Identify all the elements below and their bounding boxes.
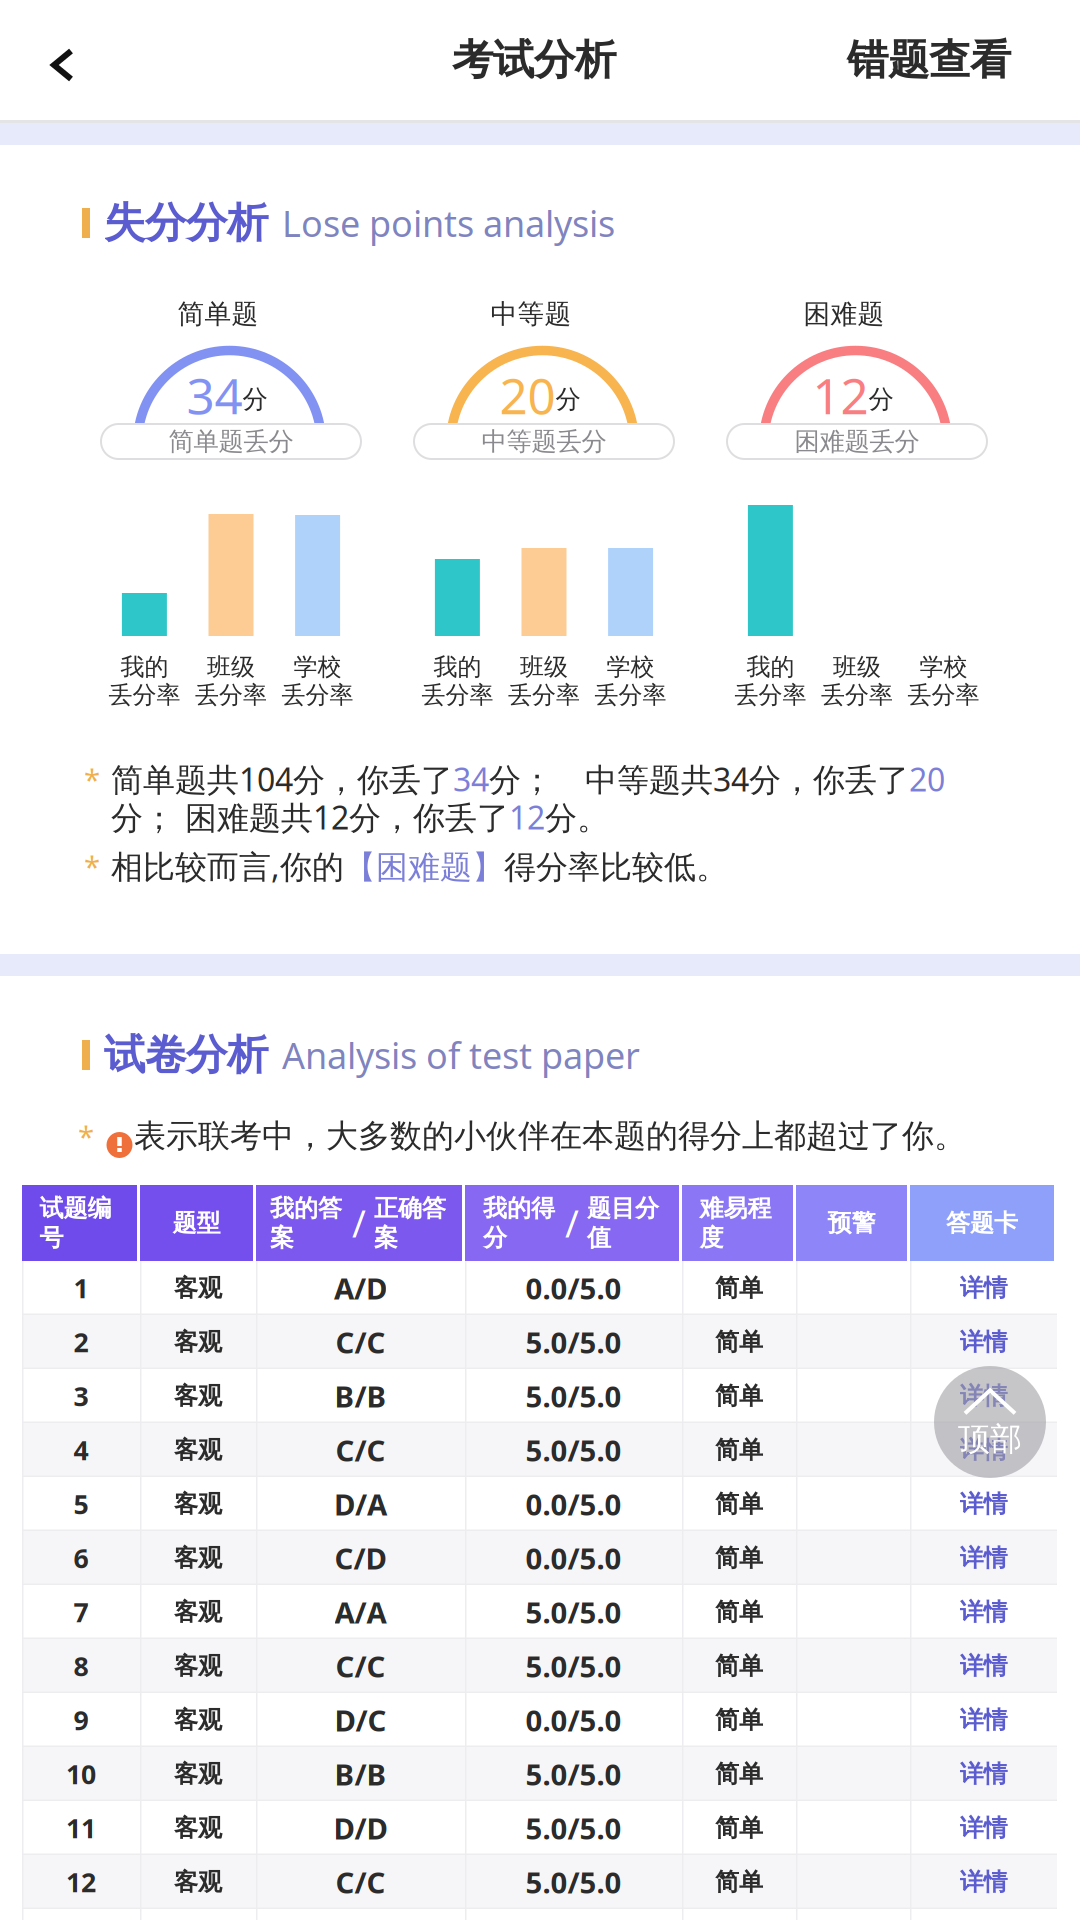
staticText: 我的: [433, 652, 481, 682]
staticText: 表示联考中，大多数的小伙伴在本题的得分上都超过了你。: [134, 1116, 966, 1156]
staticText: 我的答案: [270, 1193, 342, 1252]
staticText: A/D: [334, 1268, 387, 1307]
staticText: Lose points analysis: [282, 199, 615, 247]
button[interactable]: 11: [22, 1801, 1057, 1855]
staticText: 丢分率: [282, 680, 354, 710]
staticText: 简单: [715, 1813, 763, 1843]
staticText: 丢分率: [195, 680, 267, 710]
button[interactable]: 1: [22, 1261, 1057, 1315]
staticText: 试卷分析: [104, 1030, 268, 1080]
staticText: 5.0/5.0: [525, 1592, 621, 1631]
staticText: 简单: [715, 1759, 763, 1789]
staticText: 丢分率: [508, 680, 580, 710]
staticText: 详情: [959, 1489, 1007, 1519]
staticText: 简单题: [177, 298, 258, 330]
staticText: B/B: [334, 1754, 386, 1793]
staticText: 我的得分: [483, 1193, 555, 1252]
staticText: D/A: [334, 1484, 387, 1523]
staticText: 客观: [174, 1273, 222, 1303]
button[interactable]: 返回: [0, 0, 124, 120]
staticText: C/C: [335, 1322, 385, 1361]
staticText: D/D: [333, 1808, 387, 1847]
staticText: 12: [812, 362, 868, 428]
staticText: 10: [66, 1756, 96, 1792]
staticText: 试题编号: [39, 1193, 111, 1252]
staticText: 客观: [174, 1867, 222, 1897]
staticText: C/C: [335, 1862, 385, 1901]
staticText: 客观: [174, 1705, 222, 1735]
staticText: 0.0/5.0: [525, 1538, 621, 1577]
staticText: 简单题丢分: [168, 426, 293, 457]
staticText: A/A: [334, 1592, 386, 1631]
staticText: 相比较而言,你的【困难题】得分率比较低。: [111, 845, 728, 887]
staticText: 分: [555, 384, 580, 415]
staticText: 困难题丢分: [794, 426, 919, 457]
button[interactable]: 6: [22, 1531, 1057, 1585]
staticText: 详情: [959, 1543, 1007, 1573]
staticText: D/C: [334, 1700, 386, 1739]
staticText: 顶部: [958, 1419, 1022, 1459]
staticText: 5.0/5.0: [525, 1430, 621, 1469]
staticText: 预警: [827, 1208, 875, 1238]
staticText: 0.0/5.0: [525, 1484, 621, 1523]
staticText: 详情: [959, 1597, 1007, 1627]
staticText: 答题卡: [946, 1208, 1018, 1238]
staticText: 客观: [174, 1327, 222, 1357]
staticText: 简单: [715, 1381, 763, 1411]
staticText: 班级: [207, 652, 255, 682]
staticText: 失分分析: [104, 198, 268, 248]
staticText: 5: [73, 1486, 88, 1522]
staticText: 我的: [120, 652, 168, 682]
staticText: 简单: [715, 1597, 763, 1627]
staticText: 丢分率: [821, 680, 893, 710]
staticText: 难易程度: [699, 1193, 771, 1252]
staticText: 简单: [715, 1489, 763, 1519]
staticText: 正确答案: [374, 1193, 446, 1252]
staticText: 5.0/5.0: [525, 1862, 621, 1901]
button[interactable]: 4: [22, 1423, 1057, 1477]
button[interactable]: 7: [22, 1585, 1057, 1639]
button[interactable]: 9: [22, 1693, 1057, 1747]
staticText: 详情: [959, 1651, 1007, 1681]
staticText: 学校: [920, 652, 968, 682]
button[interactable]: 2: [22, 1315, 1057, 1369]
staticText: 中等题丢分: [481, 426, 606, 457]
staticText: 0.0/5.0: [525, 1700, 621, 1739]
staticText: 困难题: [803, 298, 884, 330]
staticText: 8: [73, 1648, 88, 1684]
button[interactable]: 8: [22, 1639, 1057, 1693]
staticText: 丢分率: [734, 680, 806, 710]
staticText: 客观: [174, 1759, 222, 1789]
staticText: 客观: [174, 1543, 222, 1573]
staticText: 考试分析: [452, 35, 616, 85]
staticText: 9: [73, 1702, 88, 1738]
staticText: 客观: [174, 1489, 222, 1519]
staticText: 5.0/5.0: [525, 1754, 621, 1793]
staticText: 详情: [959, 1327, 1007, 1357]
button[interactable]: 10: [22, 1747, 1057, 1801]
staticText: 丢分率: [908, 680, 980, 710]
button[interactable]: 12: [22, 1855, 1057, 1909]
staticText: 丢分率: [108, 680, 180, 710]
staticText: /: [565, 1198, 579, 1248]
staticText: 错题查看: [847, 35, 1011, 85]
staticText: 简单: [715, 1651, 763, 1681]
staticText: 6: [73, 1540, 88, 1576]
staticText: 学校: [294, 652, 342, 682]
button[interactable]: 3: [22, 1369, 1057, 1423]
staticText: 客观: [174, 1813, 222, 1843]
staticText: 5.0/5.0: [525, 1376, 621, 1415]
staticText: 丢分率: [421, 680, 493, 710]
button[interactable]: 回到顶部: [934, 1366, 1046, 1478]
staticText: 简单: [715, 1273, 763, 1303]
button[interactable]: 错题查看: [847, 0, 1080, 120]
button[interactable]: 5: [22, 1477, 1057, 1531]
staticText: 中等题: [490, 298, 571, 330]
staticText: 丢分率: [595, 680, 667, 710]
staticText: 班级: [833, 652, 881, 682]
staticText: 客观: [174, 1435, 222, 1465]
